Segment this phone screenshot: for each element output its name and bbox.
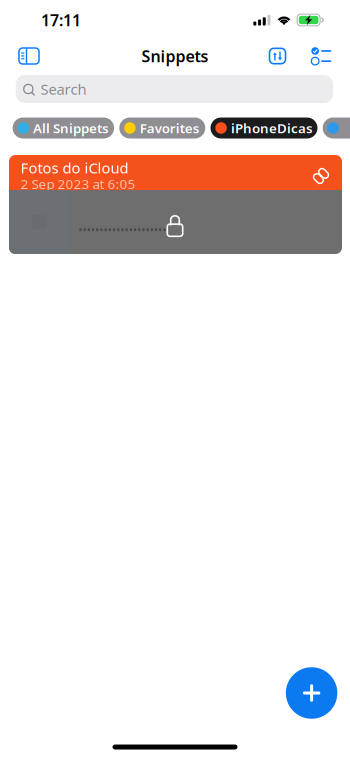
button[interactable]: Fotos do iCloud [9, 155, 342, 254]
staticText: 2 Sep 2023 at 6:05 [20, 175, 135, 193]
button[interactable]: Favorites [119, 117, 205, 138]
staticText: 17:11 [41, 9, 81, 31]
button[interactable]: Search [16, 75, 333, 103]
button[interactable] [323, 117, 350, 138]
staticText: All Snippets [33, 119, 109, 137]
staticText: iPhoneDicas [231, 119, 313, 137]
button[interactable]: iPhoneDicas [210, 117, 317, 138]
staticText: Fotos do iCloud [20, 158, 128, 177]
staticText: Search [40, 79, 86, 99]
button[interactable]: Select [296, 31, 336, 71]
button[interactable]: All Snippets [13, 117, 114, 138]
button[interactable]: Toggle Sidebar [7, 36, 51, 76]
button[interactable]: Sort [257, 36, 297, 76]
staticText: Favorites [140, 119, 200, 137]
staticText: Snippets [141, 45, 208, 67]
button[interactable]: New Snippet [286, 667, 337, 719]
